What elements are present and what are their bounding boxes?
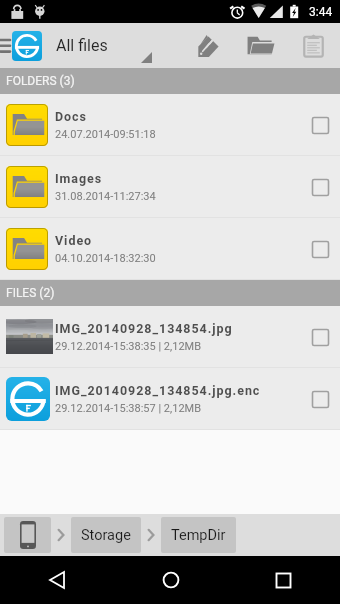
- staticText: FILES (2): [6, 286, 55, 300]
- button[interactable]: Select Video: [300, 229, 340, 269]
- button[interactable]: Select Docs: [300, 105, 340, 145]
- button[interactable]: Back: [0, 556, 114, 604]
- staticText: Images: [55, 171, 103, 186]
- staticText: 29.12.2014-15:38:35 | 2,12MB: [55, 340, 202, 353]
- staticText: Video: [55, 233, 93, 248]
- staticText: 29.12.2014-15:38:57 | 2,12MB: [55, 402, 202, 415]
- button[interactable]: Device root: [4, 517, 51, 553]
- button[interactable]: Open navigation drawer: [0, 23, 42, 68]
- staticText: All files: [56, 36, 108, 55]
- staticText: IMG_20140928_134854.jpg.enc: [55, 383, 261, 398]
- staticText: FOLDERS (3): [6, 74, 75, 88]
- staticText: Storage: [81, 527, 131, 544]
- staticText: 04.10.2014-18:32:30: [55, 252, 156, 265]
- button[interactable]: Select IMG_20140928_134854.jpg: [300, 317, 340, 357]
- button[interactable]: TempDir: [161, 517, 236, 553]
- staticText: 24.07.2014-09:51:18: [55, 128, 156, 141]
- staticText: IMG_20140928_134854.jpg: [55, 321, 233, 336]
- button[interactable]: Open folder: [234, 23, 287, 68]
- button[interactable]: Docs: [0, 94, 340, 156]
- button[interactable]: IMG_20140928_134854.jpg.enc: [0, 368, 340, 430]
- staticText: 31.08.2014-11:27:34: [55, 190, 156, 203]
- button[interactable]: Select IMG_20140928_134854.jpg.enc: [300, 379, 340, 419]
- button[interactable]: Paste: [287, 23, 340, 68]
- button[interactable]: Storage: [71, 517, 141, 553]
- button[interactable]: Recents: [227, 556, 340, 604]
- button[interactable]: Video: [0, 218, 340, 280]
- button[interactable]: Images: [0, 156, 340, 218]
- staticText: TempDir: [171, 527, 226, 544]
- button[interactable]: Select Images: [300, 167, 340, 207]
- staticText: Docs: [55, 109, 87, 124]
- button[interactable]: Home: [114, 556, 227, 604]
- staticText: 3:44: [309, 5, 333, 19]
- button[interactable]: IMG_20140928_134854.jpg: [0, 306, 340, 368]
- button[interactable]: Rename: [181, 23, 234, 68]
